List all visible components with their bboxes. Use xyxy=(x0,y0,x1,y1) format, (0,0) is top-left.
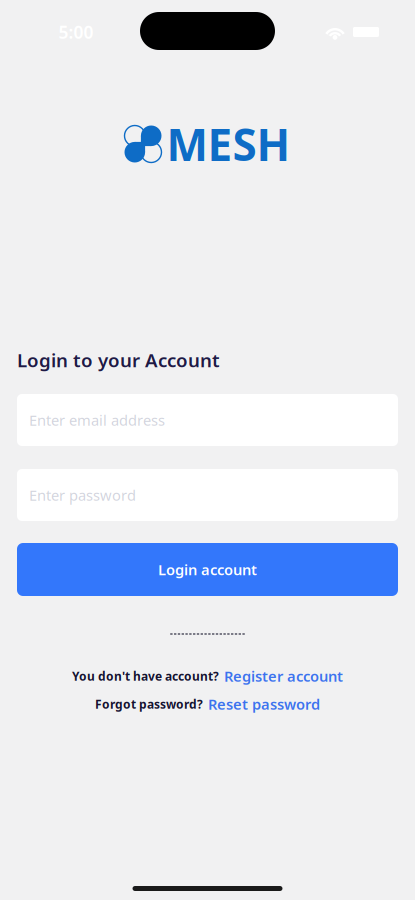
staticText: MESH xyxy=(166,115,290,173)
staticText: You don't have account? xyxy=(72,668,219,684)
staticText: Reset password xyxy=(208,694,320,714)
staticText: Register account xyxy=(224,666,343,686)
button[interactable]: Enter password xyxy=(17,469,398,521)
staticText: Enter password xyxy=(29,485,136,505)
button[interactable]: Reset password xyxy=(208,694,320,714)
button[interactable]: Register account xyxy=(224,666,343,686)
staticText: Forgot password? xyxy=(95,696,203,712)
staticText: Enter email address xyxy=(29,410,165,430)
button[interactable]: Enter email address xyxy=(17,394,398,446)
button[interactable]: Login account xyxy=(17,543,398,596)
staticText: Login to your Account xyxy=(17,348,220,372)
staticText: 5:00 xyxy=(58,20,93,43)
staticText: Login account xyxy=(158,560,257,579)
